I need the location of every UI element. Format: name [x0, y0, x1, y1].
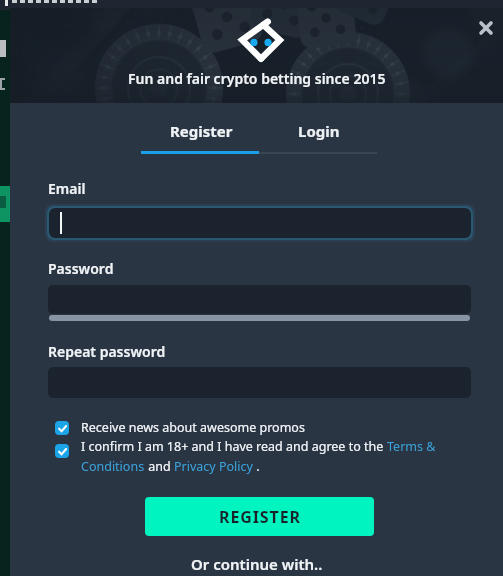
staticText: Receive news about awesome promos [81, 419, 305, 436]
button[interactable]: Close [473, 15, 499, 41]
staticText: Login [298, 121, 340, 141]
staticText: Privacy Policy [174, 458, 253, 475]
staticText: Register [170, 121, 233, 141]
button[interactable]: Login [260, 112, 378, 150]
button[interactable]: Receive news about awesome promos [55, 418, 355, 437]
staticText: Repeat password [48, 342, 166, 361]
staticText: Email [48, 179, 86, 198]
staticText: Fun and fair crypto betting since 2015 [128, 69, 386, 88]
staticText: and [145, 458, 174, 475]
staticText: REGISTER [219, 506, 301, 528]
staticText: I confirm I am 18+ and I have read and a… [81, 438, 387, 455]
staticText: Or continue with.. [191, 554, 323, 574]
staticText: . [253, 458, 260, 475]
button[interactable]: I confirm I am 18+ and I have read and a… [55, 438, 460, 475]
staticText: Terms & [387, 438, 436, 455]
button[interactable] [49, 208, 471, 238]
button[interactable]: REGISTER [145, 497, 374, 536]
staticText: Password [48, 259, 114, 278]
staticText: Conditions [81, 458, 145, 475]
button[interactable]: Register [142, 112, 260, 150]
